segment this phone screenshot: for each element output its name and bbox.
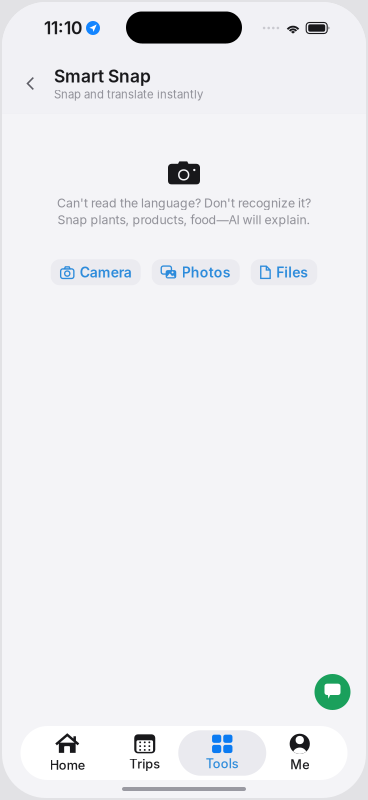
button[interactable]: Back <box>2 67 54 100</box>
staticText: Files <box>276 264 308 281</box>
button[interactable]: Trips <box>106 730 183 776</box>
staticText: Camera <box>80 264 132 281</box>
button[interactable]: Photos <box>152 259 240 285</box>
staticText: Photos <box>182 264 231 281</box>
button[interactable]: Tools <box>183 730 261 776</box>
button[interactable]: Files <box>251 259 317 285</box>
staticText: Trips <box>129 756 160 772</box>
staticText: Can't read the language? Don't recognize… <box>57 196 311 210</box>
staticText: 11:10 <box>44 17 82 38</box>
button[interactable]: Me <box>261 730 338 776</box>
staticText: Tools <box>206 756 239 771</box>
staticText: Home <box>50 757 85 773</box>
staticText: Snap plants, products, food—AI will expl… <box>57 212 310 227</box>
staticText: Smart Snap <box>54 66 151 87</box>
staticText: Snap and translate instantly <box>54 88 203 101</box>
button[interactable]: Camera <box>51 259 141 285</box>
button[interactable]: Chat <box>314 674 350 710</box>
staticText: Me <box>290 757 309 772</box>
button[interactable]: Home <box>28 730 106 776</box>
